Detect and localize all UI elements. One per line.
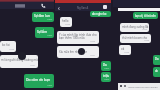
button[interactable]: alo nghe ko bbox=[90, 11, 111, 17]
staticText: m là người đang hoảng mà bbox=[1, 58, 38, 62]
staticText: 12:30 bbox=[104, 67, 110, 70]
staticText: bạn thêm 100k nữa bbox=[59, 36, 85, 40]
button[interactable]: bạn ơi, tớ trả nên bbox=[133, 12, 158, 19]
button[interactable] bbox=[57, 46, 99, 58]
staticText: Sợ lắm bbox=[37, 30, 48, 34]
staticText: triệu bbox=[103, 74, 110, 78]
button[interactable] bbox=[0, 2, 54, 9]
button[interactable]: Da bbox=[101, 61, 111, 71]
staticText: Ý của mình lập trình đưa cho bbox=[59, 33, 97, 37]
staticText: 12:30 bbox=[47, 34, 53, 37]
staticText: ko fai bbox=[2, 43, 10, 47]
staticText: 12:41 bbox=[90, 54, 96, 57]
button[interactable]: Back bbox=[56, 4, 62, 10]
staticText: mình đang xuống Bà bbox=[122, 25, 149, 29]
button[interactable]: Sợ đen lun bbox=[32, 12, 54, 22]
button[interactable]: mình đang xuống Bà bbox=[120, 23, 149, 32]
staticText: Do cảm ơn bạn bbox=[26, 77, 51, 82]
button[interactable] bbox=[0, 55, 38, 68]
staticText: Xíu nữa êm nha nghe bbox=[59, 50, 88, 54]
button[interactable] bbox=[57, 31, 99, 44]
staticText: Da bbox=[155, 57, 159, 61]
staticText: 12:30 bbox=[47, 18, 53, 21]
staticText: 12:30 bbox=[104, 78, 110, 81]
button[interactable]: ko fai bbox=[0, 41, 16, 52]
staticText: ‹ bbox=[58, 4, 60, 10]
button[interactable]: Do cảm ơn bạn bbox=[24, 74, 54, 88]
button[interactable]: Call bbox=[102, 4, 108, 10]
staticText: ok bbox=[155, 69, 158, 73]
staticText: Ng Van A bbox=[77, 6, 89, 10]
staticText: Da bbox=[103, 63, 107, 67]
staticText: 12:40 bbox=[90, 40, 96, 43]
staticText: 12:30 bbox=[47, 84, 53, 87]
staticText: 12:31 bbox=[30, 64, 36, 67]
staticText: alo nghe ko bbox=[92, 12, 107, 16]
button[interactable]: Da bbox=[153, 55, 160, 65]
button[interactable]: hello bbox=[60, 17, 72, 27]
staticText: bạn ơi, tớ trả nên bbox=[135, 14, 156, 18]
button[interactable]: Call bbox=[40, 2, 47, 9]
staticText: ok bbox=[121, 47, 125, 51]
staticText: 12:30 bbox=[142, 28, 148, 31]
staticText: 12:30 bbox=[144, 39, 150, 42]
button[interactable]: thứ mình boom cho bbox=[120, 34, 151, 43]
staticText: hello bbox=[62, 19, 69, 23]
staticText: Sợ đen lun bbox=[34, 14, 50, 18]
staticText: 12:30 bbox=[124, 51, 130, 54]
button[interactable]: Sợ lắm bbox=[35, 27, 54, 38]
staticText: 12:30 bbox=[9, 48, 15, 51]
button[interactable]: ok bbox=[119, 45, 131, 55]
staticText: thứ mình boom cho bbox=[122, 36, 148, 40]
button[interactable] bbox=[55, 3, 111, 11]
button[interactable]: triệu bbox=[101, 72, 111, 82]
staticText: 12:30 bbox=[65, 23, 71, 26]
button[interactable]: ok bbox=[153, 67, 160, 77]
staticText: https://edu.vn/cau-chuyen bbox=[128, 85, 158, 88]
